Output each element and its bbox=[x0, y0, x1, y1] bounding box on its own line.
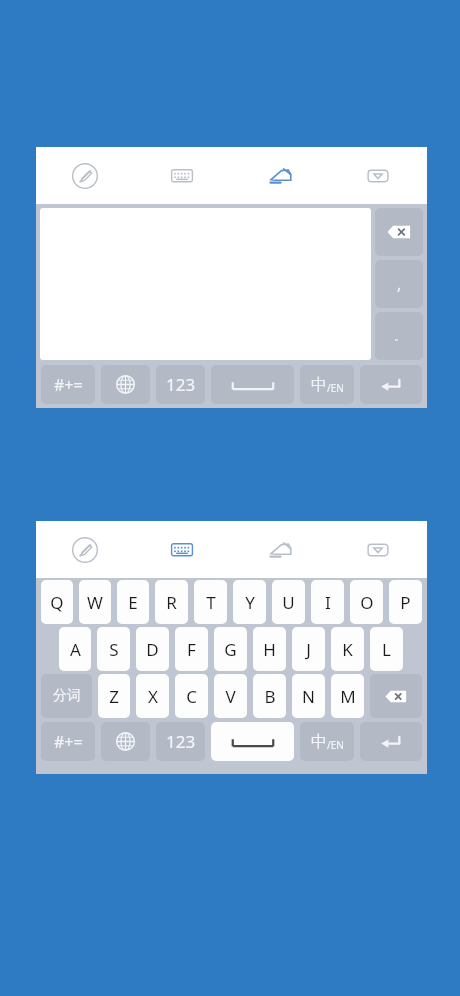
button[interactable]: Handwriting input bbox=[258, 154, 302, 198]
staticText: #+= bbox=[54, 374, 83, 396]
button[interactable]: O bbox=[350, 580, 383, 624]
staticText: M bbox=[340, 685, 356, 708]
button[interactable]: Language bbox=[101, 722, 150, 761]
button[interactable]: Z bbox=[98, 674, 130, 718]
button[interactable]: W bbox=[79, 580, 111, 624]
button[interactable]: Handwriting input bbox=[258, 528, 302, 572]
button[interactable]: Enter bbox=[360, 365, 422, 404]
staticText: 中 bbox=[311, 732, 327, 752]
button[interactable]: Backspace bbox=[375, 208, 423, 256]
staticText: H bbox=[263, 638, 276, 661]
staticText: 123 bbox=[166, 373, 196, 396]
staticText: W bbox=[87, 591, 103, 614]
staticText: G bbox=[224, 638, 237, 661]
staticText: N bbox=[302, 685, 315, 708]
staticText: /EN bbox=[327, 381, 344, 395]
staticText: #+= bbox=[54, 731, 83, 753]
staticText: R bbox=[166, 591, 177, 614]
button[interactable]: R bbox=[155, 580, 188, 624]
staticText: A bbox=[70, 638, 81, 661]
staticText: , bbox=[397, 273, 402, 295]
button[interactable]: #+= bbox=[41, 365, 95, 404]
staticText: Q bbox=[50, 591, 64, 614]
staticText: 123 bbox=[166, 730, 196, 753]
staticText: B bbox=[264, 685, 276, 708]
staticText: L bbox=[382, 638, 391, 661]
staticText: J bbox=[306, 638, 311, 661]
staticText: U bbox=[282, 591, 295, 614]
staticText: O bbox=[360, 591, 374, 614]
button[interactable]: P bbox=[389, 580, 422, 624]
button[interactable]: C bbox=[175, 674, 208, 718]
staticText: 。 bbox=[394, 329, 405, 343]
button[interactable]: A bbox=[59, 627, 91, 671]
button[interactable]: L bbox=[370, 627, 403, 671]
staticText: Z bbox=[109, 685, 119, 708]
staticText: P bbox=[400, 591, 411, 614]
button[interactable]: 中 bbox=[300, 365, 354, 404]
staticText: E bbox=[128, 591, 138, 614]
button[interactable]: Enter bbox=[360, 722, 422, 761]
button[interactable]: J bbox=[292, 627, 325, 671]
button[interactable]: Language bbox=[101, 365, 150, 404]
button[interactable]: Hide keyboard bbox=[356, 528, 400, 572]
staticText: X bbox=[148, 685, 158, 708]
button[interactable]: G bbox=[214, 627, 247, 671]
button[interactable]: M bbox=[331, 674, 364, 718]
button[interactable]: Y bbox=[233, 580, 266, 624]
button[interactable]: 123 bbox=[156, 365, 205, 404]
button[interactable]: 123 bbox=[156, 722, 205, 761]
button[interactable]: E bbox=[117, 580, 149, 624]
button[interactable]: 中 bbox=[300, 722, 354, 761]
button[interactable]: Backspace bbox=[370, 674, 422, 718]
staticText: K bbox=[342, 638, 353, 661]
staticText: Y bbox=[245, 591, 255, 614]
button[interactable]: Hide keyboard bbox=[356, 154, 400, 198]
button[interactable]: Clear handwriting bbox=[63, 154, 107, 198]
staticText: F bbox=[187, 638, 196, 661]
button[interactable]: Comma bbox=[375, 260, 423, 308]
button[interactable]: N bbox=[292, 674, 325, 718]
button[interactable]: U bbox=[272, 580, 305, 624]
button[interactable]: S bbox=[97, 627, 130, 671]
button[interactable]: I bbox=[311, 580, 344, 624]
button[interactable]: Keyboard input bbox=[160, 154, 204, 198]
staticText: D bbox=[146, 638, 159, 661]
button[interactable]: D bbox=[136, 627, 169, 671]
button[interactable]: T bbox=[194, 580, 227, 624]
staticText: S bbox=[109, 638, 119, 661]
staticText: T bbox=[206, 591, 216, 614]
button[interactable]: H bbox=[253, 627, 286, 671]
button[interactable]: Q bbox=[41, 580, 73, 624]
button[interactable]: X bbox=[136, 674, 169, 718]
button[interactable]: F bbox=[175, 627, 208, 671]
button[interactable]: Space bbox=[211, 365, 294, 404]
button[interactable]: Space bbox=[211, 722, 294, 761]
staticText: I bbox=[325, 591, 331, 614]
staticText: V bbox=[225, 685, 236, 708]
staticText: /EN bbox=[327, 738, 344, 752]
button[interactable]: K bbox=[331, 627, 364, 671]
button[interactable]: 分词 bbox=[41, 674, 92, 718]
button[interactable]: #+= bbox=[41, 722, 95, 761]
button[interactable]: Keyboard input bbox=[160, 528, 204, 572]
button[interactable]: V bbox=[214, 674, 247, 718]
staticText: C bbox=[186, 685, 197, 708]
staticText: 中 bbox=[311, 375, 327, 395]
button[interactable]: Clear handwriting bbox=[63, 528, 107, 572]
button[interactable]: B bbox=[253, 674, 286, 718]
staticText: 分词 bbox=[53, 687, 81, 705]
